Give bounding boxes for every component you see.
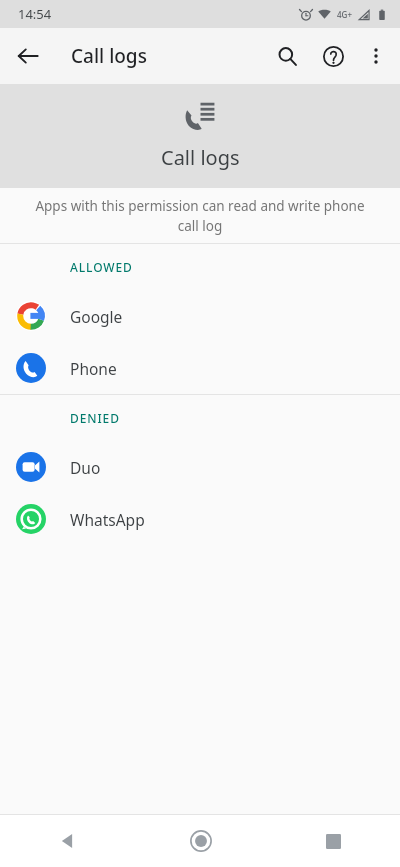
staticText: WhatsApp (70, 509, 145, 530)
button[interactable]: Help (310, 33, 356, 79)
button[interactable]: WhatsApp (0, 493, 400, 545)
button[interactable]: More options (356, 36, 396, 76)
staticText: Call logs (161, 144, 240, 171)
button[interactable]: Home (134, 815, 267, 867)
staticText: Apps with this permission can read and w… (32, 197, 368, 235)
staticText: 14:54 (18, 5, 52, 23)
staticText: DENIED (70, 410, 120, 426)
button[interactable]: Recent apps (267, 815, 400, 867)
button[interactable]: Phone (0, 342, 400, 394)
staticText: Phone (70, 358, 117, 379)
staticText: 4G+ (337, 9, 352, 20)
button[interactable]: Google (0, 290, 400, 342)
staticText: Google (70, 306, 123, 327)
button[interactable]: Search (264, 33, 310, 79)
staticText: Call logs (71, 43, 147, 69)
button[interactable]: Back (0, 815, 134, 867)
staticText: ALLOWED (70, 259, 133, 275)
button[interactable]: Duo (0, 441, 400, 493)
button[interactable]: Back (6, 34, 50, 78)
staticText: Duo (70, 457, 101, 478)
